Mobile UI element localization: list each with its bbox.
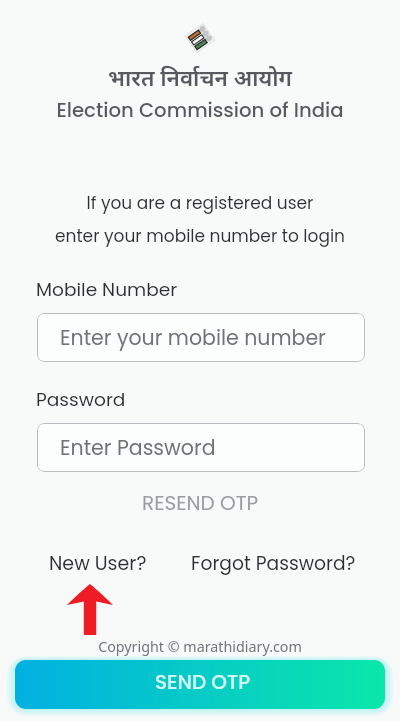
button[interactable]: New User?: [49, 550, 147, 577]
staticText: Election Commission of India: [0, 96, 400, 124]
other: Election Commission of India logo: [182, 20, 218, 56]
staticText: Password: [36, 386, 126, 412]
staticText: SEND OTP: [155, 668, 251, 696]
staticText: RESEND OTP: [142, 489, 259, 515]
staticText: enter your mobile number to login: [0, 224, 400, 248]
staticText: New User?: [49, 550, 147, 577]
staticText: Enter Password: [60, 433, 216, 462]
staticText: भारत निर्वाचन आयोग: [0, 66, 400, 95]
staticText: If you are a registered user: [0, 191, 400, 215]
button[interactable]: SEND OTP: [15, 660, 385, 709]
staticText: Forgot Password?: [191, 550, 356, 576]
staticText: Copyright © marathidiary.com: [0, 637, 400, 656]
staticText: Mobile Number: [36, 276, 178, 302]
button[interactable]: RESEND OTP: [0, 489, 400, 515]
button[interactable]: Enter Password: [60, 423, 365, 472]
staticText: Enter your mobile number: [60, 323, 326, 352]
button[interactable]: Enter your mobile number: [60, 313, 365, 362]
button[interactable]: Forgot Password?: [191, 550, 356, 576]
